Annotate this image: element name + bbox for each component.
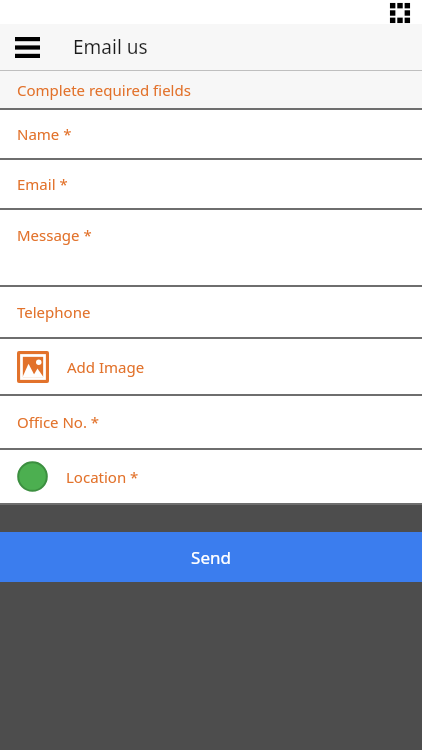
button[interactable]: Open navigation menu bbox=[13, 35, 42, 60]
staticText: Message * bbox=[17, 225, 92, 245]
button[interactable]: Add Image bbox=[0, 339, 422, 394]
button[interactable]: Telephone bbox=[0, 287, 422, 337]
staticText: Name * bbox=[17, 124, 72, 144]
staticText: Email us bbox=[73, 34, 148, 60]
button[interactable]: Location * bbox=[0, 450, 422, 503]
staticText: Send bbox=[191, 546, 231, 569]
staticText: Email * bbox=[17, 174, 68, 194]
button[interactable]: Name * bbox=[0, 110, 422, 158]
button[interactable]: Message * bbox=[0, 210, 422, 285]
staticText: Location * bbox=[66, 467, 139, 487]
staticText: Office No. * bbox=[17, 412, 100, 432]
button[interactable]: Office No. * bbox=[0, 396, 422, 448]
staticText: Telephone bbox=[17, 302, 91, 322]
other: App indicator bbox=[389, 2, 411, 24]
staticText: Complete required fields bbox=[17, 80, 191, 100]
button[interactable]: Email * bbox=[0, 160, 422, 208]
staticText: Add Image bbox=[67, 357, 145, 377]
other: Open navigation menu bbox=[15, 37, 40, 58]
button[interactable]: Send bbox=[0, 532, 422, 582]
